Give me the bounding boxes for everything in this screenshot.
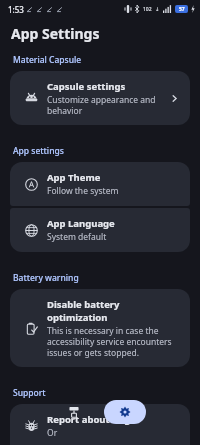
staticText: 102	[143, 6, 152, 13]
button[interactable]: Settings	[104, 400, 146, 424]
button[interactable]: Disable battery optimization	[10, 289, 190, 367]
button[interactable]: Report about bug	[10, 404, 190, 445]
staticText: System default	[47, 231, 107, 243]
staticText: This is necessary in case the accessibil…	[47, 325, 182, 358]
staticText: Or	[47, 427, 58, 439]
staticText: ↓	[155, 6, 160, 12]
staticText: Support	[13, 387, 46, 399]
staticText: Disable battery optimization	[47, 298, 182, 324]
button[interactable]: Appearance	[54, 401, 94, 423]
staticText: Battery warning	[13, 272, 79, 284]
staticText: App Settings	[11, 24, 100, 43]
staticText: 1:53	[8, 4, 24, 15]
button[interactable]: App Theme	[10, 162, 190, 206]
staticText: App Theme	[47, 171, 101, 184]
staticText: Material Capsule	[13, 54, 82, 66]
staticText: Capsule settings	[47, 80, 126, 93]
button[interactable]: App Language	[10, 208, 190, 252]
staticText: Customize appearance and behavior	[47, 94, 166, 116]
staticText: Report about bug	[47, 413, 131, 426]
staticText: App settings	[13, 145, 64, 157]
button[interactable]: Capsule settings	[10, 71, 190, 125]
staticText: 57	[179, 6, 185, 13]
staticText: App Language	[47, 217, 115, 230]
staticText: Follow the system	[47, 185, 119, 197]
